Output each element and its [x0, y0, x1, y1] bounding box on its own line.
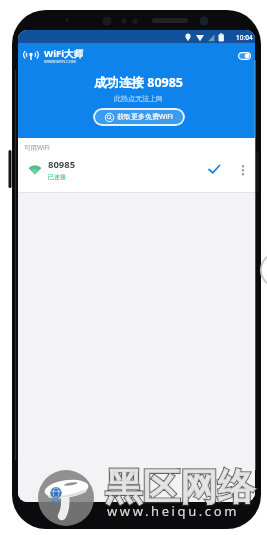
staticText: 80985: [48, 158, 76, 171]
staticText: 黑区网络: [105, 464, 255, 511]
staticText: 10:04: [236, 33, 253, 42]
button[interactable]: [238, 52, 251, 60]
staticText: WWW.WIFI.COM: [44, 59, 76, 65]
staticText: www.heiqu.com: [107, 502, 239, 520]
staticText: 已连接: [48, 173, 66, 181]
staticText: 此热点无法上网: [114, 94, 163, 103]
staticText: 获取更多免费WiFi: [117, 112, 173, 122]
staticText: WiFi大师: [44, 47, 84, 60]
button[interactable]: 80985: [18, 153, 255, 185]
button[interactable]: [241, 163, 245, 175]
button[interactable]: 获取更多免费WiFi: [93, 108, 185, 126]
staticText: 成功连接 80985: [94, 74, 184, 91]
staticText: 黑区网络: [105, 464, 255, 511]
staticText: 可用WiFi: [24, 143, 50, 152]
